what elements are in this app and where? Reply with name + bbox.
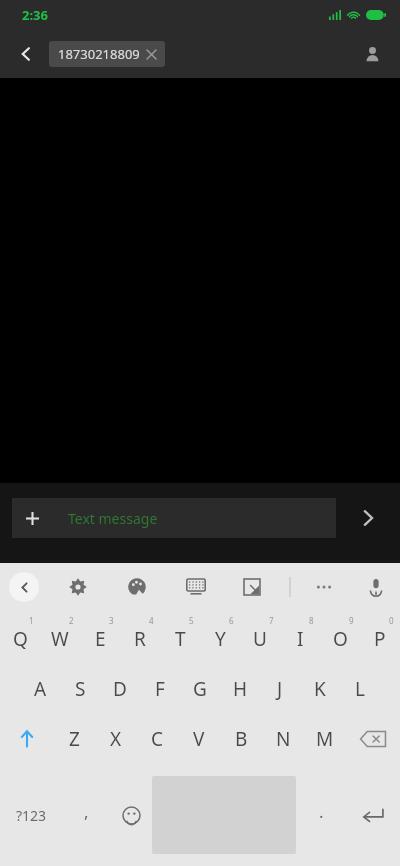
staticText: L [355, 676, 365, 702]
staticText: S [75, 676, 86, 702]
staticText: 1 [29, 615, 34, 626]
button[interactable]: Send [336, 498, 400, 538]
button[interactable]: Z [54, 714, 95, 764]
staticText: F [155, 676, 165, 702]
staticText: 6 [229, 615, 234, 626]
button[interactable]: J [260, 664, 300, 714]
button[interactable]: Theme [117, 567, 157, 607]
button[interactable]: Resize keyboard [232, 567, 272, 607]
button[interactable]: Attach [12, 498, 52, 538]
staticText: ?123 [16, 806, 47, 825]
button[interactable]: N [262, 714, 304, 764]
staticText: U [253, 626, 267, 652]
button[interactable]: Y [200, 610, 240, 664]
button[interactable]: F [140, 664, 180, 714]
button[interactable]: P [360, 610, 400, 664]
button[interactable]: Shift [0, 714, 54, 764]
button[interactable]: K [300, 664, 340, 714]
staticText: K [314, 676, 326, 702]
staticText: Text message [68, 509, 158, 528]
staticText: , [84, 800, 89, 823]
button[interactable]: M [304, 714, 346, 764]
staticText: D [113, 676, 127, 702]
staticText: 5 [189, 615, 194, 626]
staticText: Z [69, 726, 80, 752]
staticText: T [175, 626, 186, 652]
staticText: 2 [69, 615, 74, 626]
staticText: Q [13, 626, 28, 652]
button[interactable]: E [80, 610, 120, 664]
staticText: I [297, 626, 304, 652]
staticText: R [134, 626, 146, 652]
button[interactable]: O [320, 610, 360, 664]
button[interactable]: U [240, 610, 280, 664]
button[interactable]: X [95, 714, 136, 764]
staticText: 18730218809 [58, 45, 140, 63]
staticText: G [193, 676, 207, 702]
button[interactable]: D [100, 664, 140, 714]
button[interactable]: T [160, 610, 200, 664]
button[interactable]: 18730218809 [49, 41, 165, 67]
staticText: Y [215, 626, 226, 652]
staticText: . [319, 800, 324, 823]
staticText: H [233, 676, 248, 702]
button[interactable]: A [20, 664, 60, 714]
staticText: B [235, 726, 248, 752]
staticText: A [34, 676, 47, 702]
button[interactable]: Attach [12, 498, 336, 538]
button[interactable]: G [180, 664, 220, 714]
button[interactable]: B [220, 714, 262, 764]
staticText: 7 [269, 615, 274, 626]
staticText: P [374, 626, 386, 652]
staticText: W [51, 626, 69, 652]
button[interactable]: Collapse toolbar [9, 572, 39, 602]
staticText: E [95, 626, 106, 652]
button[interactable]: I [280, 610, 320, 664]
staticText: 0 [389, 615, 394, 626]
button[interactable]: C [136, 714, 178, 764]
staticText: J [277, 676, 283, 702]
staticText: C [151, 726, 164, 752]
staticText: O [333, 626, 348, 652]
button[interactable]: Voice input [356, 567, 396, 607]
button[interactable]: Keyboard layout [176, 567, 216, 607]
button[interactable]: H [220, 664, 260, 714]
button[interactable]: ?123 [0, 764, 62, 866]
button[interactable]: V [178, 714, 220, 764]
staticText: 2:36 [22, 6, 48, 24]
staticText: N [276, 726, 291, 752]
button[interactable]: R [120, 610, 160, 664]
button[interactable]: S [60, 664, 100, 714]
button[interactable]: More options [304, 567, 344, 607]
staticText: 4 [149, 615, 154, 626]
button[interactable]: Enter [346, 764, 400, 866]
button[interactable]: L [340, 664, 380, 714]
staticText: X [110, 726, 122, 752]
staticText: M [316, 726, 334, 752]
staticText: V [193, 726, 205, 752]
staticText: 9 [349, 615, 354, 626]
button[interactable]: W [40, 610, 80, 664]
button[interactable]: Q [0, 610, 40, 664]
button[interactable]: , [62, 764, 110, 866]
button[interactable]: Back [6, 34, 46, 74]
button[interactable]: Backspace [346, 714, 400, 764]
staticText: 3 [109, 615, 114, 626]
button[interactable]: Settings [58, 567, 98, 607]
button[interactable]: Emoji [110, 764, 152, 866]
button[interactable]: Contact [352, 34, 392, 74]
staticText: 8 [309, 615, 314, 626]
